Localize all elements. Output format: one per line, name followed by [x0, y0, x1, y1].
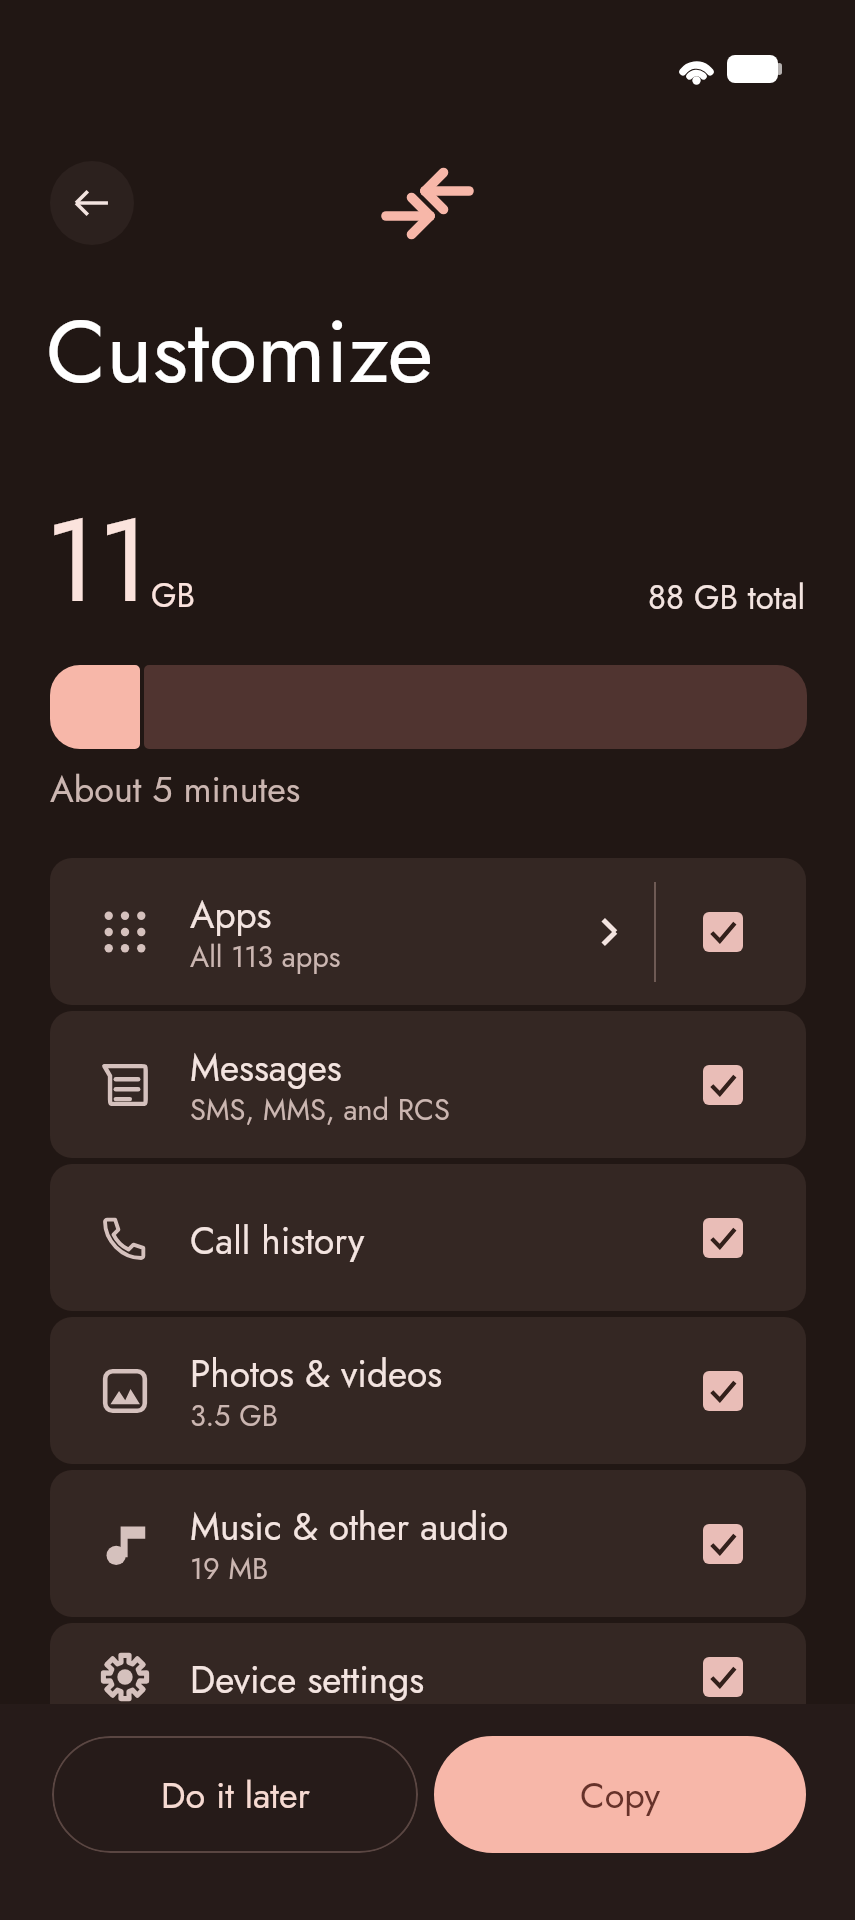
button[interactable]: Do it later — [52, 1736, 418, 1853]
button[interactable]: Include Music & other audio — [703, 1524, 743, 1564]
button[interactable]: Photos & videos — [50, 1317, 806, 1464]
staticText: Call history — [190, 1214, 365, 1267]
staticText: 3.5 GB — [190, 1395, 278, 1437]
staticText: Copy — [580, 1769, 661, 1821]
staticText: 88 GB total — [648, 574, 806, 622]
staticText: Do it later — [161, 1769, 310, 1821]
button[interactable]: Messages — [50, 1011, 806, 1158]
staticText: Device settings — [190, 1653, 425, 1706]
staticText: Photos & videos — [190, 1347, 443, 1400]
staticText: About 5 minutes — [50, 763, 301, 815]
staticText: Messages — [190, 1041, 342, 1094]
staticText: GB — [151, 572, 195, 620]
button[interactable]: Apps — [50, 858, 806, 1005]
button[interactable]: Copy — [434, 1736, 806, 1853]
button[interactable]: Include Photos & videos — [703, 1371, 743, 1411]
staticText: Apps — [190, 888, 272, 941]
staticText: Music & other audio — [190, 1500, 509, 1553]
button[interactable]: Include Messages — [703, 1065, 743, 1105]
button[interactable]: Include Apps — [703, 912, 743, 952]
button[interactable]: Include Device settings — [703, 1657, 743, 1697]
staticText: All 113 apps — [190, 936, 341, 978]
button[interactable]: Include Call history — [703, 1218, 743, 1258]
staticText: SMS, MMS, and RCS — [190, 1089, 450, 1131]
button[interactable]: Device settings — [50, 1623, 806, 1770]
staticText: Customize — [46, 288, 434, 415]
staticText: 19 MB — [190, 1548, 269, 1590]
button[interactable]: Call history — [50, 1164, 806, 1311]
button[interactable]: Music & other audio — [50, 1470, 806, 1617]
staticText: 11 — [45, 476, 151, 645]
button[interactable]: Back — [50, 161, 134, 245]
